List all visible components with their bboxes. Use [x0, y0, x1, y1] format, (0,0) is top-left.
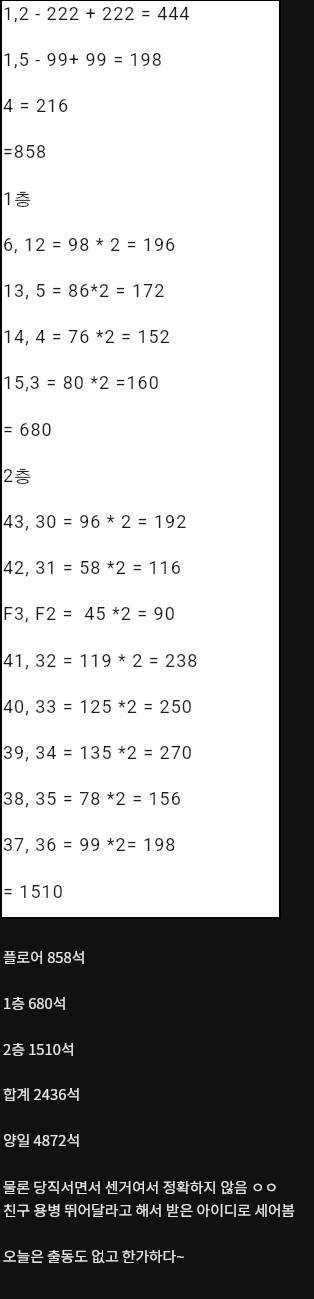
- staticText: 37, 36 = 99 *2= 198: [3, 834, 177, 855]
- staticText: = 680: [3, 419, 53, 440]
- staticText: 합계 2436석: [3, 1083, 303, 1104]
- staticText: 38, 35 = 78 *2 = 156: [3, 788, 182, 809]
- staticText: F3, F2 = 45 *2 = 90: [3, 603, 176, 624]
- staticText: 1,5 - 99+ 99 = 198: [3, 49, 163, 70]
- staticText: 13, 5 = 86*2 = 172: [3, 280, 166, 301]
- staticText: 1층 680석: [3, 992, 303, 1013]
- button[interactable]: Attached photo of the seat count note: [0, 0, 281, 919]
- staticText: 양일 4872석: [3, 1129, 303, 1150]
- staticText: 2층 1510석: [3, 1038, 303, 1059]
- staticText: 6, 12 = 98 * 2 = 196: [3, 234, 177, 255]
- staticText: 오늘은 출동도 없고 한가하다~: [3, 1245, 303, 1266]
- staticText: =858: [3, 141, 48, 162]
- staticText: 40, 33 = 125 *2 = 250: [3, 696, 193, 717]
- staticText: 43, 30 = 96 * 2 = 192: [3, 511, 188, 532]
- staticText: 14, 4 = 76 *2 = 152: [3, 326, 171, 347]
- staticText: = 1510: [3, 881, 64, 902]
- staticText: 4 = 216: [3, 95, 70, 116]
- staticText: 15,3 = 80 *2 =160: [3, 372, 160, 393]
- staticText: 42, 31 = 58 *2 = 116: [3, 557, 182, 578]
- staticText: 2층: [3, 465, 34, 488]
- staticText: 39, 34 = 135 *2 = 270: [3, 742, 193, 763]
- staticText: 플로어 858석: [3, 946, 303, 967]
- staticText: 41, 32 = 119 * 2 = 238: [3, 650, 199, 671]
- staticText: 1,2 - 222 + 222 = 444: [3, 3, 191, 24]
- staticText: 물론 당직서면서 센거여서 정확하지 않음 ㅇㅇ 친구 용병 뛰어달라고 해서 …: [3, 1176, 303, 1221]
- staticText: 1층: [3, 188, 34, 211]
